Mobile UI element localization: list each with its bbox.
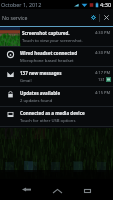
button[interactable]: Recent apps [72, 179, 102, 200]
staticText: Touch for other USB options [20, 118, 76, 124]
staticText: 2 updates found [20, 98, 53, 104]
staticText: 137 new messages [20, 70, 62, 76]
button[interactable]: Updates available [0, 87, 113, 107]
staticText: Wired headset connected [20, 50, 78, 56]
staticText: October 1, 2012 [1, 1, 42, 8]
staticText: 131 [98, 77, 105, 82]
button[interactable]: 137 new messages [0, 67, 113, 87]
staticText: Gmail [20, 78, 32, 84]
staticText: 4:30 [100, 1, 112, 9]
staticText: Connected as a media device [20, 110, 85, 116]
staticText: Microphone based headset [20, 58, 74, 64]
staticText: 4:30 PM [95, 30, 111, 35]
button[interactable]: Connected as a media device [0, 107, 113, 127]
button[interactable]: Clear all notifications [100, 9, 112, 26]
button[interactable]: Wired headset connected [0, 47, 113, 67]
staticText: 4:17 PM [95, 70, 111, 75]
button[interactable]: Quick settings [87, 9, 99, 26]
staticText: No service [2, 14, 28, 21]
staticText: Updates available [20, 90, 61, 96]
button[interactable]: Home [42, 179, 72, 200]
staticText: Screenshot captured. [22, 30, 70, 36]
staticText: 4:15 PM [95, 90, 111, 95]
button[interactable]: Screenshot captured. [0, 27, 113, 47]
staticText: Touch to view your screenshot. [22, 38, 83, 44]
staticText: 4:30 PM [95, 50, 111, 55]
button[interactable]: Back [11, 179, 42, 200]
